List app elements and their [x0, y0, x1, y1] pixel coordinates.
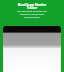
staticText: Get personal insights and guidance about…: [1, 9, 63, 18]
staticText: Blood Sugar Monitor Tracker: [1, 3, 63, 10]
